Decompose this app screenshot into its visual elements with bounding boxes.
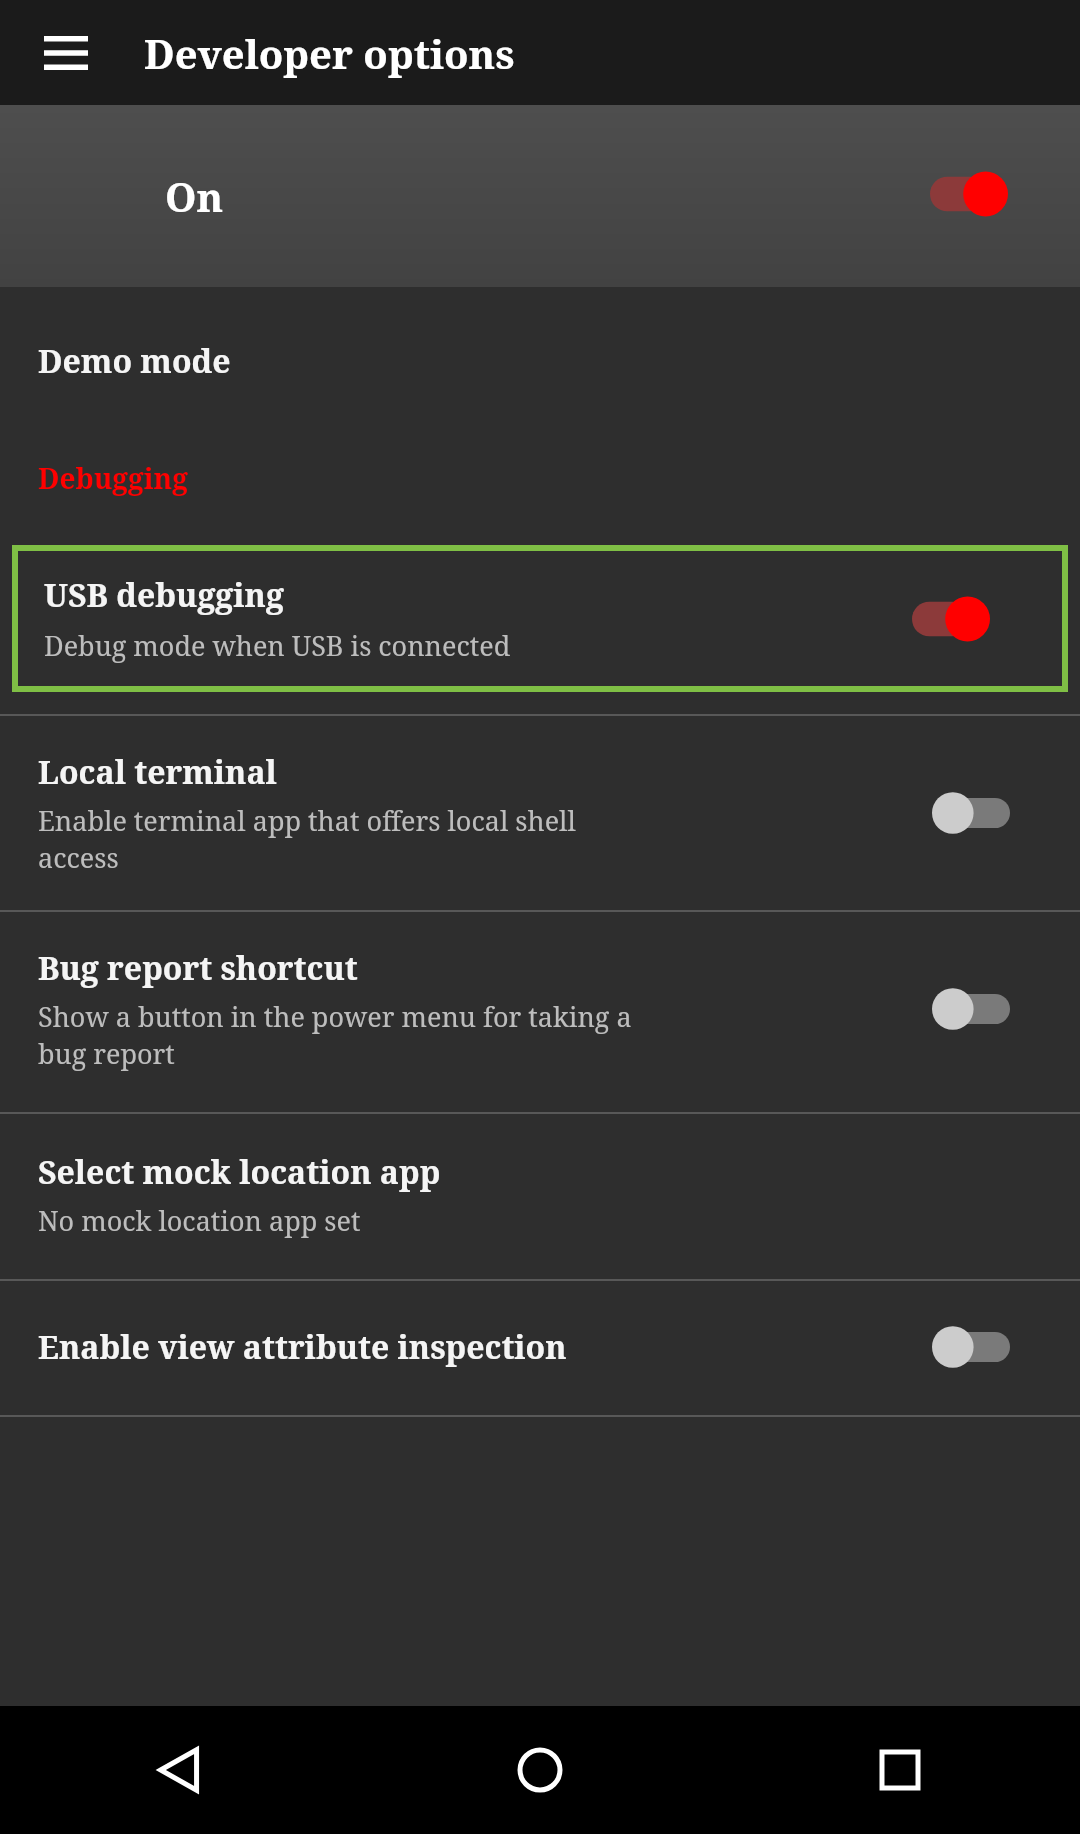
staticText: Developer options [144, 26, 515, 80]
staticText: Enable terminal app that offers local sh… [38, 802, 576, 876]
staticText: Debugging [38, 459, 188, 497]
button[interactable]: Open navigation menu [30, 17, 102, 89]
button[interactable]: USB debugging [18, 551, 1062, 686]
staticText: On [165, 169, 224, 223]
button[interactable]: Home [360, 1706, 720, 1834]
other: Toggle off [930, 983, 1010, 1035]
staticText: Bug report shortcut [38, 946, 358, 990]
staticText: Demo mode [38, 339, 231, 383]
other: Toggle off [930, 1321, 1010, 1373]
button[interactable]: Select mock location app [0, 1114, 1080, 1279]
button[interactable]: Recent apps [720, 1706, 1080, 1834]
other: Toggle on [912, 591, 992, 647]
staticText: Show a button in the power menu for taki… [38, 998, 632, 1072]
staticText: Debug mode when USB is connected [44, 627, 511, 664]
button[interactable]: Demo mode [0, 329, 1080, 393]
button[interactable]: Enable view attribute inspection [0, 1281, 1080, 1415]
button[interactable]: Local terminal [0, 716, 1080, 910]
staticText: Local terminal [38, 750, 277, 794]
other: Toggle off [930, 787, 1010, 839]
staticText: Enable view attribute inspection [38, 1325, 567, 1369]
button[interactable]: Bug report shortcut [0, 912, 1080, 1112]
staticText: No mock location app set [38, 1202, 361, 1239]
staticText: Select mock location app [38, 1150, 441, 1194]
other: Toggle on [930, 166, 1010, 222]
staticText: USB debugging [44, 573, 284, 617]
button[interactable]: Back [0, 1706, 360, 1834]
button[interactable]: On [0, 105, 1080, 287]
